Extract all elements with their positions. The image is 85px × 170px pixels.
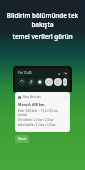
button[interactable]: Yönet bbox=[15, 135, 29, 143]
button[interactable]: Quick setting 4 bbox=[45, 78, 53, 86]
button[interactable]: Quick setting 3 bbox=[36, 78, 44, 86]
button[interactable]: Araç Asistanı bbox=[15, 92, 70, 132]
staticText: Pzt 12:45 bbox=[18, 71, 32, 75]
staticText: Yakıt: %68 dolu • 15,4 L/3,6 bar kontrol bbox=[18, 109, 67, 117]
staticText: Yönet bbox=[18, 137, 26, 141]
button[interactable]: Quick setting 5 bbox=[54, 78, 62, 86]
staticText: temel verileri görün bbox=[4, 32, 81, 40]
staticText: Menzil: 438 km bbox=[18, 102, 45, 107]
button[interactable]: Quick setting 2 bbox=[27, 78, 35, 86]
button[interactable]: Quick setting 1 bbox=[18, 78, 26, 86]
staticText: Ön lastikler: 2,4 bar / 2,4 bar bbox=[18, 118, 54, 122]
button[interactable]: Quick setting 6 bbox=[63, 78, 67, 86]
staticText: Bildirim bölümünde tek bakışta bbox=[4, 11, 81, 29]
staticText: Araç Asistanı bbox=[23, 95, 41, 99]
staticText: Arka lastikler: 2,3 bar / 2,3 bar bbox=[18, 123, 56, 127]
